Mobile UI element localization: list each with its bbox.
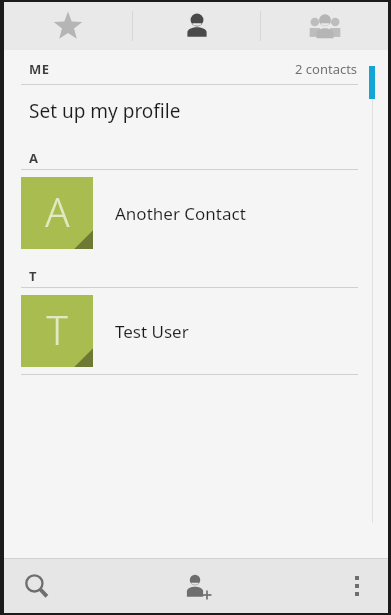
button[interactable]: Add contact [158,558,238,613]
button[interactable]: Set up my profile [4,85,388,137]
staticText: A [29,149,38,167]
button[interactable]: Groups [261,2,388,50]
button[interactable]: All contacts [133,2,260,50]
staticText: T [29,267,37,285]
staticText: Set up my profile [29,98,181,124]
button[interactable]: Search [4,558,70,613]
button[interactable]: Favorites [4,2,132,50]
staticText: A [45,184,70,238]
button[interactable]: T [4,288,388,374]
staticText: T [46,302,68,356]
button[interactable]: A [4,170,388,256]
staticText: 2 contacts [295,60,358,78]
staticText: Another Contact [115,202,246,225]
staticText: Test User [115,320,189,343]
staticText: ME [29,60,50,78]
button[interactable]: More options [326,558,388,613]
